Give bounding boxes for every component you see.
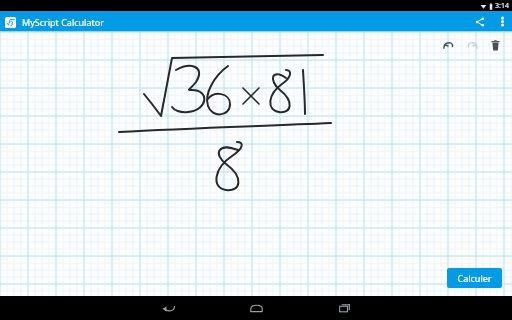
button[interactable]: Redo [460, 36, 484, 54]
staticText: MyScript Calculator [22, 16, 104, 28]
button[interactable]: Share [468, 11, 492, 32]
button[interactable]: Recents [318, 296, 370, 320]
button[interactable]: Delete [484, 36, 506, 54]
button[interactable]: Back [142, 296, 194, 320]
button[interactable]: Calculer [447, 268, 502, 288]
staticText: 3:14 [495, 1, 509, 11]
button[interactable]: Undo [436, 36, 460, 54]
staticText: Calculer [457, 272, 492, 284]
button[interactable]: More options [492, 11, 512, 32]
button[interactable]: Home [230, 296, 282, 320]
